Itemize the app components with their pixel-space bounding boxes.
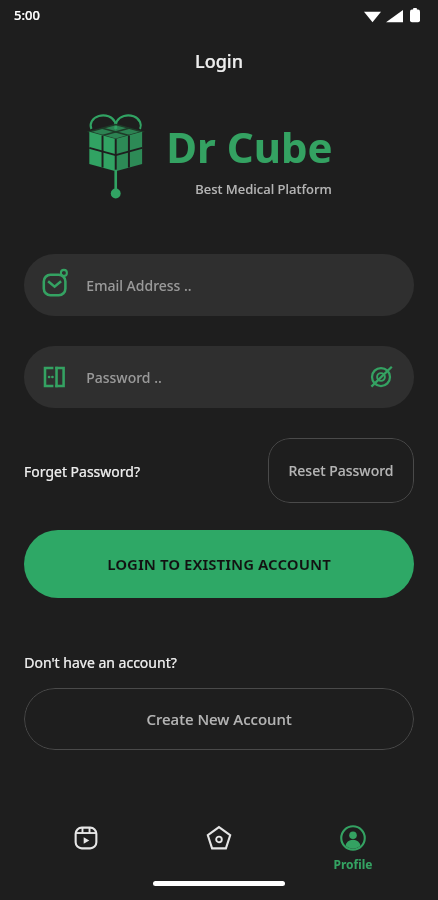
staticText: Best Medical Platform — [195, 180, 332, 198]
button[interactable]: Home — [171, 804, 267, 852]
staticText: Email Address .. — [86, 276, 192, 295]
button[interactable]: Create New Account — [24, 688, 414, 750]
button[interactable]: Email Address .. — [24, 254, 414, 316]
button[interactable]: Profile — [305, 804, 401, 870]
button[interactable]: Password .. — [24, 346, 414, 408]
staticText: Password .. — [86, 368, 162, 387]
staticText: Create New Account — [146, 709, 292, 729]
button[interactable]: Forget Password? — [24, 456, 140, 486]
staticText: Forget Password? — [24, 462, 140, 481]
staticText: LOGIN TO EXISTING ACCOUNT — [107, 554, 331, 574]
staticText: Login — [195, 49, 243, 74]
staticText: Reset Password — [288, 461, 394, 480]
staticText: Dr Cube — [166, 118, 333, 174]
button[interactable]: Shop — [38, 804, 134, 852]
staticText: 5:00 — [14, 6, 40, 24]
button[interactable]: Show password — [366, 362, 396, 392]
staticText: Profile — [333, 856, 373, 870]
button[interactable]: Reset Password — [268, 438, 414, 503]
staticText: Don't have an account? — [24, 653, 177, 672]
button[interactable]: LOGIN TO EXISTING ACCOUNT — [24, 530, 414, 598]
